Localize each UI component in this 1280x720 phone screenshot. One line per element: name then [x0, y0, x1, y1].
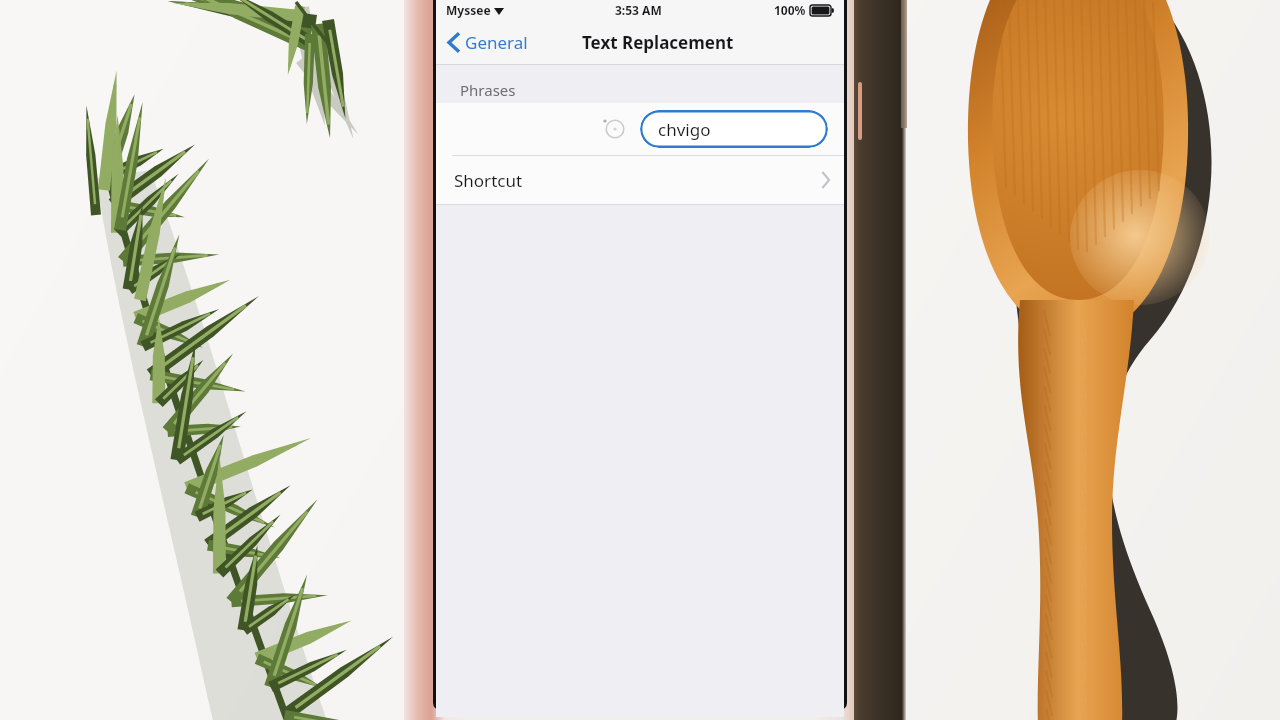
staticText: 3:53 AM: [615, 2, 662, 18]
staticText: chvigo: [658, 118, 711, 141]
staticText: General: [465, 31, 528, 54]
other: Edit phrase: [604, 118, 626, 140]
other: Back to General: [448, 32, 460, 53]
staticText: Myssee: [446, 2, 491, 18]
button[interactable]: Back to General: [442, 27, 534, 58]
button[interactable]: Shortcut: [436, 156, 844, 204]
button[interactable]: Edit phrase: [436, 103, 844, 155]
staticText: Shortcut: [454, 169, 523, 192]
staticText: Text Replacement: [582, 31, 734, 54]
staticText: Phrases: [460, 80, 516, 100]
staticText: 100%: [774, 2, 806, 18]
button[interactable]: chvigo: [640, 110, 828, 148]
